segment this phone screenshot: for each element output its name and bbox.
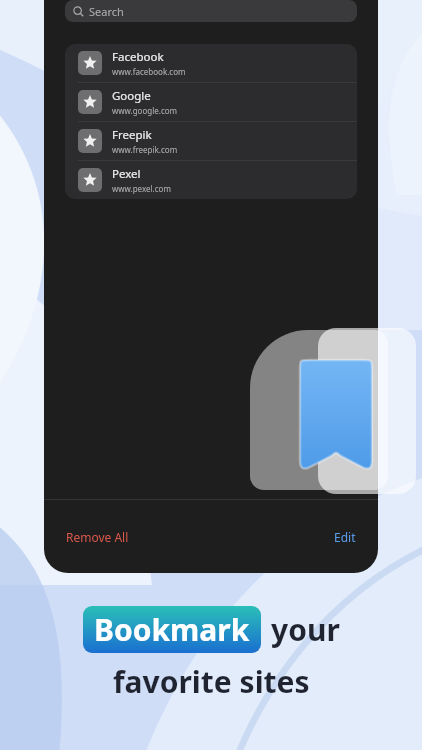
button[interactable]: Remove All [66, 523, 129, 551]
staticText: Search [89, 4, 124, 19]
staticText: your [271, 609, 340, 650]
button[interactable]: Google [65, 83, 357, 121]
button[interactable]: Search [65, 0, 357, 22]
staticText: Remove All [66, 529, 129, 545]
staticText: Pexel [112, 166, 141, 182]
staticText: Freepik [112, 127, 152, 143]
button[interactable]: Bookmark [250, 330, 388, 490]
button[interactable]: Pexel [65, 161, 357, 199]
staticText: www.google.com [112, 105, 178, 116]
button[interactable]: Freepik [65, 122, 357, 160]
staticText: Edit [334, 529, 356, 545]
staticText: Google [112, 88, 151, 104]
staticText: www.pexel.com [112, 183, 171, 194]
staticText: www.freepik.com [112, 144, 178, 155]
staticText: Facebook [112, 49, 164, 65]
staticText: Bookmark [94, 609, 250, 650]
button[interactable]: Edit [334, 523, 356, 551]
staticText: www.facebook.com [112, 66, 186, 77]
button[interactable]: Facebook [65, 44, 357, 82]
staticText: favorite sites [113, 661, 310, 702]
